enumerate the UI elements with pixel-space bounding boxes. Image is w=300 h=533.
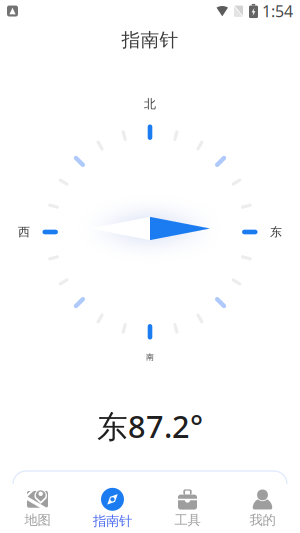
staticText: 西	[18, 225, 30, 239]
staticText: 指南针	[93, 513, 132, 529]
staticText: 东	[270, 225, 282, 239]
staticText: 指南针	[121, 28, 178, 51]
staticText: 地图	[24, 512, 50, 528]
staticText: 1:54	[262, 0, 293, 22]
staticText: 北	[144, 97, 156, 111]
button[interactable]: 指南针	[75, 484, 150, 533]
staticText: 南	[146, 352, 154, 362]
button[interactable]: 工具	[150, 484, 225, 533]
staticText: 东87.2°	[97, 406, 203, 446]
button[interactable]: 地图	[0, 484, 75, 533]
staticText: 工具	[174, 512, 200, 528]
button[interactable]: 我的	[225, 484, 300, 533]
staticText: 我的	[249, 512, 275, 528]
